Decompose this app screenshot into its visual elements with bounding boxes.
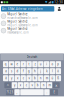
staticText: y	[14, 83, 15, 87]
staticText: b	[37, 83, 39, 87]
button[interactable]: r	[20, 61, 26, 67]
button[interactable]: Miguel Sanchez	[0, 13, 64, 20]
staticText: Deutsch	[26, 55, 37, 59]
button[interactable]: ß	[56, 75, 61, 81]
staticText: ü	[51, 76, 53, 80]
staticText: c	[26, 83, 27, 87]
button[interactable]: ^	[4, 82, 11, 88]
button[interactable]: ?123	[6, 89, 14, 95]
button[interactable]: g	[26, 68, 32, 74]
button[interactable]: p	[56, 61, 61, 67]
button[interactable]: ä	[3, 75, 8, 81]
button[interactable]: z	[32, 61, 38, 67]
button[interactable]: y	[9, 75, 14, 81]
staticText: miguel.s@example.com	[7, 23, 37, 27]
button[interactable]: m	[47, 82, 52, 88]
staticText: .	[46, 90, 47, 94]
button[interactable]: Add contact	[55, 5, 63, 13]
button[interactable]: b	[32, 75, 38, 81]
button[interactable]: f	[20, 68, 26, 74]
staticText: x	[55, 82, 57, 88]
staticText: n	[40, 76, 42, 80]
staticText: k	[46, 69, 47, 73]
staticText: a	[5, 69, 6, 73]
staticText: w	[10, 62, 12, 66]
staticText: An: E-Mail-Adresse eingeben	[2, 7, 43, 11]
button[interactable]: o	[50, 61, 55, 67]
staticText: s	[11, 69, 12, 73]
button[interactable]: e	[15, 61, 20, 67]
staticText: ^	[7, 82, 9, 88]
staticText: y	[11, 76, 12, 80]
button[interactable]: v	[26, 75, 32, 81]
button[interactable]: ,	[14, 89, 20, 95]
staticText: j	[40, 69, 41, 73]
button[interactable]: k	[44, 68, 49, 74]
button[interactable]: E	[50, 89, 58, 95]
staticText: i	[46, 62, 47, 66]
button[interactable]: i	[44, 61, 49, 67]
staticText: Miguel Sanchez	[7, 27, 27, 30]
button[interactable]: x	[15, 75, 20, 81]
staticText: h	[34, 69, 36, 73]
button[interactable]	[20, 89, 44, 95]
button[interactable]: y	[12, 82, 17, 88]
staticText: b	[34, 76, 36, 80]
staticText: ,	[17, 90, 18, 94]
staticText: ?123	[6, 90, 13, 94]
button[interactable]: l	[50, 68, 55, 74]
staticText: t	[29, 62, 30, 66]
staticText: u	[40, 62, 42, 66]
staticText: n	[43, 83, 45, 87]
staticText: Miguel Sanchez	[7, 20, 27, 23]
button[interactable]: b	[35, 82, 41, 88]
button[interactable]: v	[29, 82, 35, 88]
button[interactable]: s	[9, 68, 14, 74]
button[interactable]: n	[41, 82, 46, 88]
staticText: o	[51, 62, 53, 66]
button[interactable]: x	[18, 82, 23, 88]
staticText: 12:30	[54, 0, 63, 4]
button[interactable]: c	[23, 82, 29, 88]
staticText: r	[23, 62, 24, 66]
button[interactable]: x	[53, 82, 60, 88]
button[interactable]: ü	[50, 75, 55, 81]
staticText: q	[5, 62, 7, 66]
staticText: ö	[57, 69, 59, 73]
button[interactable]: Miguel Sanchez	[0, 27, 64, 34]
button[interactable]: w	[9, 61, 14, 67]
staticText: v	[29, 76, 30, 80]
button[interactable]: t	[26, 61, 32, 67]
staticText: ms@example.com	[7, 31, 28, 34]
button[interactable]: Miguel Sanchez	[0, 20, 64, 27]
button[interactable]: u	[38, 61, 43, 67]
button[interactable]: .	[44, 89, 50, 95]
staticText: f	[23, 69, 24, 73]
button[interactable]: ö	[56, 68, 61, 74]
staticText: z	[34, 62, 35, 66]
button[interactable]: m	[44, 75, 49, 81]
button[interactable]: Deutsch	[0, 54, 63, 60]
staticText: m	[49, 83, 51, 87]
staticText: p	[57, 62, 59, 66]
staticText: Miguel Sanchez	[7, 13, 27, 16]
button[interactable]: c	[20, 75, 26, 81]
button[interactable]: j	[38, 68, 43, 74]
staticText: x	[20, 83, 21, 87]
button[interactable]: An: E-Mail-Adresse eingeben	[1, 6, 54, 11]
staticText: ä	[5, 76, 6, 80]
staticText: x	[17, 76, 18, 80]
button[interactable]: q	[3, 61, 8, 67]
button[interactable]: n	[38, 75, 43, 81]
button[interactable]: d	[15, 68, 20, 74]
staticText: d	[16, 69, 18, 73]
button[interactable]: a	[3, 68, 8, 74]
staticText: l	[52, 69, 53, 73]
staticText: c	[23, 76, 24, 80]
staticText: E	[54, 90, 55, 94]
staticText: e	[16, 62, 18, 66]
staticText: m.sanchez@example.com	[7, 16, 37, 20]
staticText: ß	[57, 76, 59, 80]
staticText: g	[28, 69, 30, 73]
button[interactable]: h	[32, 68, 38, 74]
